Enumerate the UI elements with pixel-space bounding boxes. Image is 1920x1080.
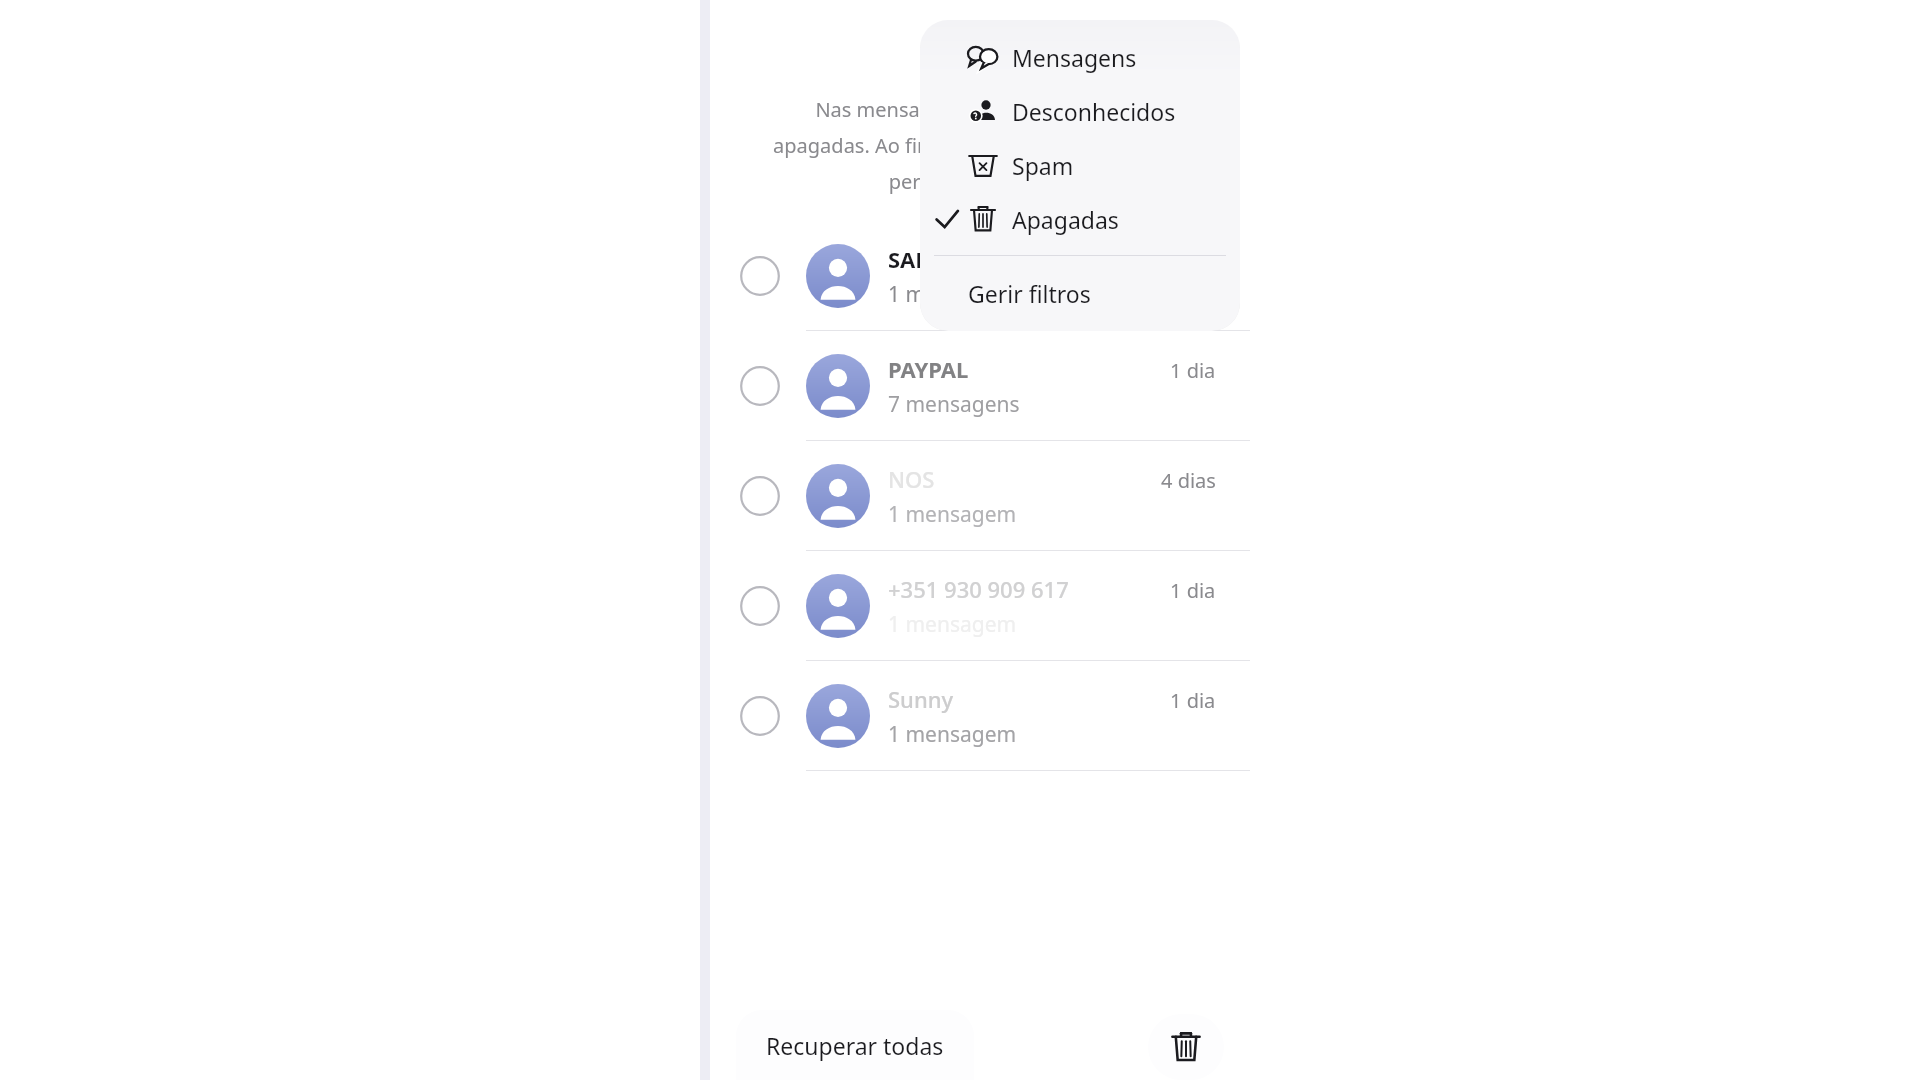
- button[interactable]: Selecionar conversa: [740, 586, 780, 626]
- staticText: 4 dias: [1161, 467, 1216, 494]
- button[interactable]: Selecionar conversa: [740, 256, 780, 296]
- button[interactable]: Recuperar todas: [736, 1010, 974, 1080]
- button[interactable]: Selecionar conversa: [710, 221, 1250, 331]
- staticText: Gerir filtros: [968, 278, 1091, 309]
- staticText: 1 dia: [1170, 577, 1216, 604]
- button[interactable]: Selecionar conversa: [740, 476, 780, 516]
- staticText: Apagadas: [1012, 204, 1119, 235]
- staticText: Mensagens: [1012, 42, 1137, 73]
- button[interactable]: Desconhecidos: [920, 84, 1240, 138]
- button[interactable]: Gerir filtros: [920, 265, 1240, 321]
- staticText: NOS: [888, 464, 935, 494]
- staticText: permanentemente.: [766, 168, 1194, 195]
- staticText: 1 mensagem: [888, 720, 1017, 749]
- staticText: apagadas. Ao fim de 30 dias, são elimina…: [766, 132, 1194, 159]
- button[interactable]: Selecionar conversa: [710, 441, 1250, 551]
- button[interactable]: Eliminar todas: [1148, 1014, 1224, 1080]
- staticText: +351 930 909 617: [888, 574, 1069, 604]
- staticText: 7 mensagens: [888, 390, 1020, 419]
- staticText: 1 mensagem: [888, 610, 1017, 639]
- staticText: 1 mensagem: [888, 280, 1017, 309]
- staticText: Spam: [1012, 150, 1074, 181]
- staticText: PAYPAL: [888, 354, 969, 384]
- button[interactable]: Selecionar conversa: [710, 551, 1250, 661]
- staticText: Nas mensagens apagadas ficam as mensagen…: [766, 96, 1194, 123]
- staticText: SANTANDER: [888, 244, 1021, 274]
- staticText: 1 dia: [1170, 687, 1216, 714]
- staticText: 1 mensagem: [888, 500, 1017, 529]
- button[interactable]: Selecionar conversa: [710, 331, 1250, 441]
- button[interactable]: Mensagens: [920, 30, 1240, 84]
- button[interactable]: Selecionar conversa: [740, 696, 780, 736]
- button[interactable]: Selecionar conversa: [740, 366, 780, 406]
- button[interactable]: Spam: [920, 138, 1240, 192]
- button[interactable]: Apagadas: [920, 192, 1240, 246]
- staticText: Recuperar todas: [766, 1030, 944, 1061]
- button[interactable]: Selecionar conversa: [710, 661, 1250, 771]
- staticText: Desconhecidos: [1012, 96, 1176, 127]
- staticText: 1 dia: [1170, 357, 1216, 384]
- staticText: Sunny: [888, 684, 954, 714]
